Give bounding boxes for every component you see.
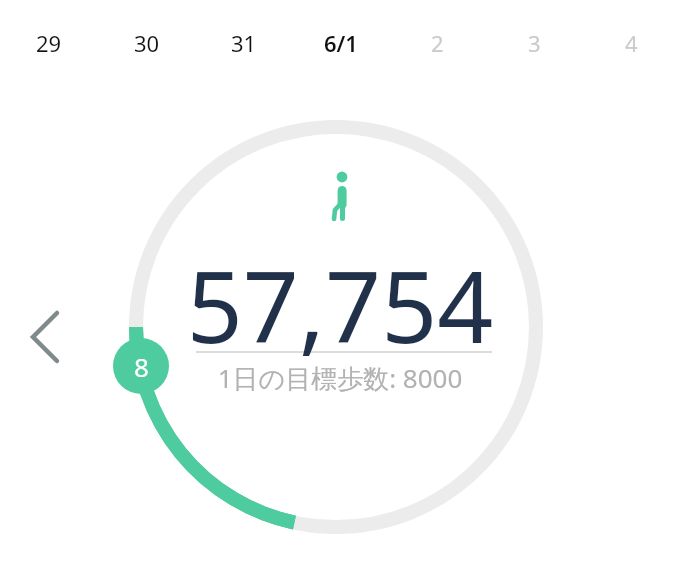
button[interactable]: 2 <box>389 0 486 86</box>
staticText: 1日の目標歩数: 8000 <box>0 360 680 396</box>
staticText: 6/1 <box>324 28 358 58</box>
button[interactable]: 30 <box>98 0 195 86</box>
staticText: 29 <box>36 28 62 58</box>
button[interactable]: Previous day <box>14 300 78 364</box>
button[interactable]: 4 <box>583 0 680 86</box>
staticText: 3 <box>528 28 541 58</box>
button[interactable]: 29 <box>0 0 98 86</box>
staticText: 8 <box>134 349 149 384</box>
staticText: 4 <box>625 28 638 58</box>
button[interactable]: 8 <box>113 338 169 394</box>
staticText: 30 <box>134 28 160 58</box>
staticText: 31 <box>231 28 257 58</box>
button[interactable]: 31 <box>195 0 292 86</box>
button[interactable]: 6/1 <box>292 0 389 86</box>
staticText: 57,754 <box>0 238 680 371</box>
staticText: 2 <box>431 28 444 58</box>
button[interactable]: 3 <box>486 0 583 86</box>
